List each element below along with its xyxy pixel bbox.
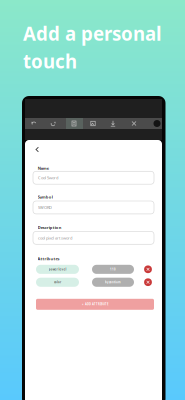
- staticText: cool pixel art sword: [38, 235, 72, 240]
- button[interactable]: Preview: [87, 118, 99, 129]
- staticText: Attributes: [37, 256, 59, 261]
- button[interactable]: Close: [128, 118, 140, 129]
- button[interactable]: Remove attribute: [144, 278, 152, 286]
- button[interactable]: Undo: [28, 118, 40, 129]
- button[interactable]: Back: [30, 143, 43, 156]
- staticText: Cool Sword: [38, 175, 58, 180]
- button[interactable]: Redo: [47, 118, 59, 129]
- staticText: Symbol: [38, 194, 53, 199]
- button[interactable]: + ADD ATTRIBUTE: [36, 299, 154, 310]
- staticText: color: [54, 280, 61, 284]
- staticText: Description: [38, 225, 62, 230]
- staticText: power level: [48, 268, 66, 271]
- staticText: byzantium: [105, 280, 121, 284]
- button[interactable]: Code: [68, 118, 80, 129]
- staticText: Name: [38, 165, 49, 171]
- staticText: touch: [23, 49, 77, 74]
- staticText: + ADD ATTRIBUTE: [82, 302, 108, 306]
- staticText: 110: [110, 268, 116, 271]
- button[interactable]: Download: [107, 118, 119, 129]
- staticText: SWORD: [38, 205, 52, 210]
- staticText: Add a personal: [23, 21, 162, 46]
- button[interactable]: Remove attribute: [144, 265, 152, 273]
